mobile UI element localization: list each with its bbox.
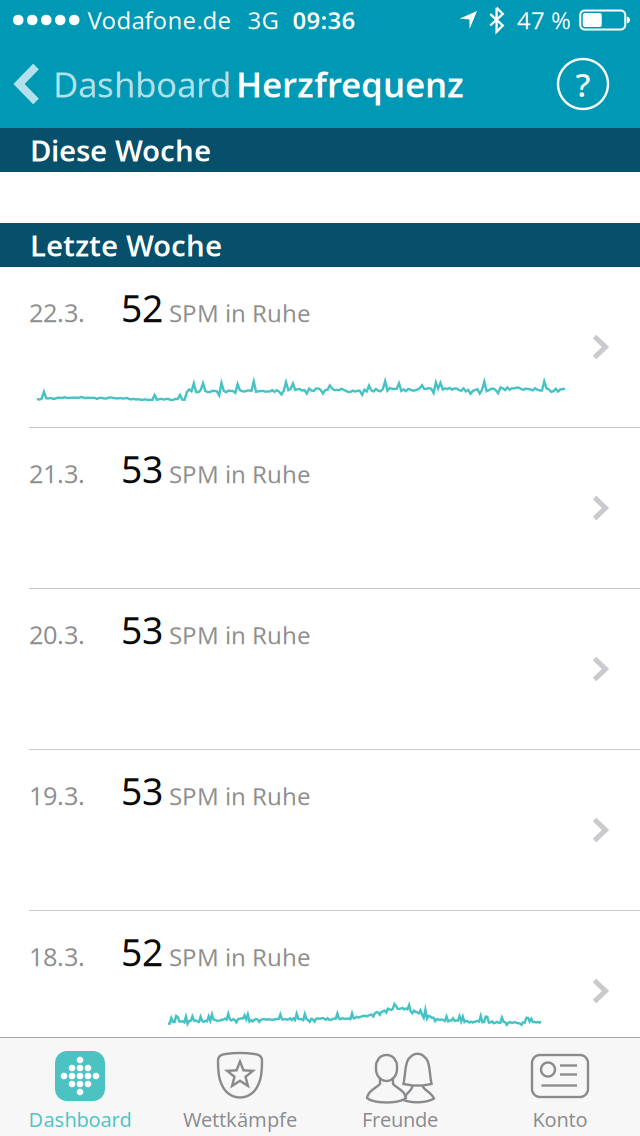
button[interactable]: Wettkämpfe [160,1038,320,1136]
staticText: 53 [121,766,163,816]
button[interactable]: Dashboard [0,1038,160,1136]
staticText: 3G [247,4,278,36]
staticText: 53 [121,444,163,494]
staticText: Dashboard [28,1106,131,1133]
button[interactable]: 22.3. [0,267,640,427]
staticText: Herzfrequenz [236,61,464,107]
staticText: SPM in Ruhe [163,941,311,973]
button[interactable]: 18.3. [0,911,640,1071]
button[interactable]: 19.3. [0,750,640,910]
button[interactable]: Hilfe [546,40,620,128]
staticText: SPM in Ruhe [163,780,311,812]
staticText: SPM in Ruhe [163,458,311,490]
button[interactable]: 20.3. [0,589,640,749]
staticText: 22.3. [29,296,85,329]
staticText: 21.3. [29,457,85,490]
staticText: 20.3. [29,618,85,651]
button[interactable]: 21.3. [0,428,640,588]
button[interactable]: Konto [480,1038,640,1136]
staticText: 19.3. [29,779,85,812]
staticText: 52 [121,283,163,333]
staticText: 47 % [517,4,571,36]
staticText: Vodafone.de [87,4,231,36]
button[interactable]: Freunde [320,1038,480,1136]
staticText: 18.3. [29,940,85,973]
staticText: SPM in Ruhe [163,297,311,329]
staticText: Letzte Woche [30,225,222,264]
button[interactable]: Dashboard [0,40,231,128]
staticText: 53 [121,605,163,655]
staticText: Dashboard [53,61,231,107]
staticText: Konto [532,1106,587,1133]
staticText: 09:36 [292,4,355,36]
staticText: Diese Woche [30,130,211,169]
staticText: 52 [121,927,163,977]
staticText: SPM in Ruhe [163,619,311,651]
staticText: ? [575,62,590,106]
staticText: Wettkämpfe [183,1106,297,1133]
staticText: Freunde [362,1106,438,1133]
